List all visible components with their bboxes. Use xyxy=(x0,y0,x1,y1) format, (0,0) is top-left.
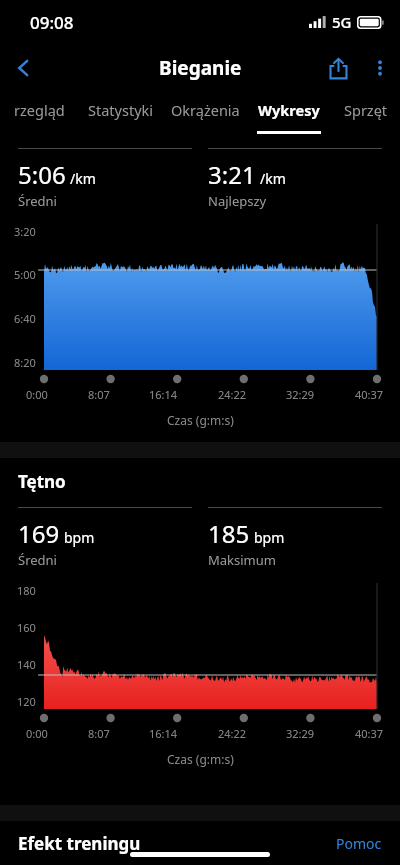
staticText: Pomoc xyxy=(336,834,382,853)
button[interactable]: Sprzęt xyxy=(331,92,400,134)
staticText: 185 xyxy=(208,517,250,550)
staticText: /km xyxy=(70,169,96,188)
staticText: 5:06 xyxy=(18,158,66,191)
staticText: 8:07 xyxy=(88,726,110,741)
staticText: 0:00 xyxy=(26,726,48,741)
staticText: 5G xyxy=(332,12,352,32)
button[interactable]: Okrążenia xyxy=(163,92,247,134)
button[interactable]: Back xyxy=(0,44,48,92)
staticText: /km xyxy=(260,169,286,188)
staticText: bpm xyxy=(64,528,95,547)
staticText: 40:37 xyxy=(355,387,384,402)
staticText: 8:20 xyxy=(14,355,36,370)
staticText: Okrążenia xyxy=(171,100,240,120)
staticText: 09:08 xyxy=(30,11,74,34)
staticText: Wykresy xyxy=(258,100,320,120)
staticText: 24:22 xyxy=(218,726,247,741)
staticText: 16:14 xyxy=(149,726,178,741)
staticText: 0:00 xyxy=(26,387,48,402)
staticText: Średni xyxy=(18,551,57,569)
staticText: 180 xyxy=(17,583,36,598)
button[interactable]: Wykresy xyxy=(247,92,331,134)
button[interactable]: Pomoc xyxy=(318,826,400,861)
staticText: Czas (g:m:s) xyxy=(167,751,234,767)
staticText: 3:21 xyxy=(208,158,256,191)
button[interactable]: Share xyxy=(316,46,360,90)
staticText: 40:37 xyxy=(355,726,384,741)
staticText: bpm xyxy=(254,528,285,547)
staticText: 169 xyxy=(18,517,60,550)
button[interactable]: Statystyki xyxy=(79,92,163,134)
button[interactable]: rzegląd xyxy=(0,92,79,134)
staticText: 3:20 xyxy=(14,224,36,239)
staticText: Statystyki xyxy=(88,100,154,120)
staticText: 5:00 xyxy=(14,267,36,282)
staticText: Średni xyxy=(18,192,57,210)
staticText: Sprzęt xyxy=(344,100,388,120)
staticText: Bieganie xyxy=(159,55,242,81)
staticText: rzegląd xyxy=(14,100,65,120)
staticText: Tętno xyxy=(18,470,66,493)
staticText: 6:40 xyxy=(14,311,36,326)
staticText: Najlepszy xyxy=(208,192,267,210)
staticText: 140 xyxy=(17,657,36,672)
staticText: Efekt treningu xyxy=(18,832,141,855)
button[interactable]: More options xyxy=(360,48,400,88)
staticText: 24:22 xyxy=(218,387,247,402)
staticText: Czas (g:m:s) xyxy=(167,412,234,428)
staticText: 120 xyxy=(17,694,36,709)
staticText: 32:29 xyxy=(286,387,315,402)
staticText: 160 xyxy=(17,620,36,635)
staticText: 8:07 xyxy=(88,387,110,402)
staticText: 16:14 xyxy=(149,387,178,402)
staticText: 32:29 xyxy=(286,726,315,741)
staticText: Maksimum xyxy=(208,551,276,569)
